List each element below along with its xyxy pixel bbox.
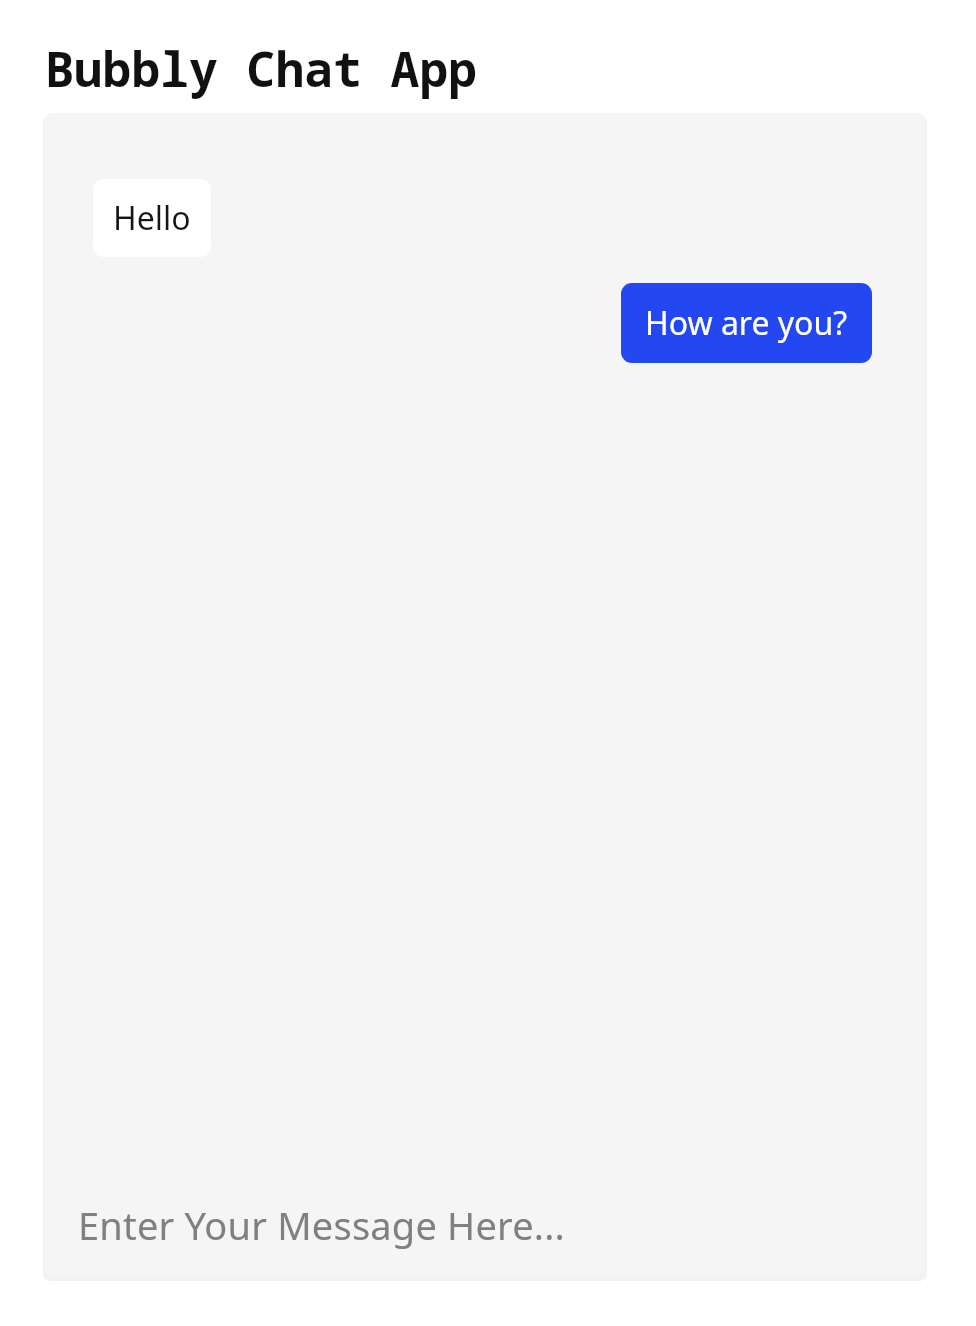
staticText: Bubbly Chat App — [45, 36, 478, 101]
button[interactable]: Bubbly Chat App — [45, 36, 478, 101]
button[interactable]: Hello — [93, 179, 211, 257]
button[interactable]: Enter Your Message Here... — [45, 1179, 925, 1275]
staticText: How are you? — [645, 301, 848, 345]
staticText: Enter Your Message Here... — [78, 1199, 566, 1251]
button[interactable]: How are you? — [621, 283, 872, 363]
staticText: Hello — [113, 196, 191, 240]
